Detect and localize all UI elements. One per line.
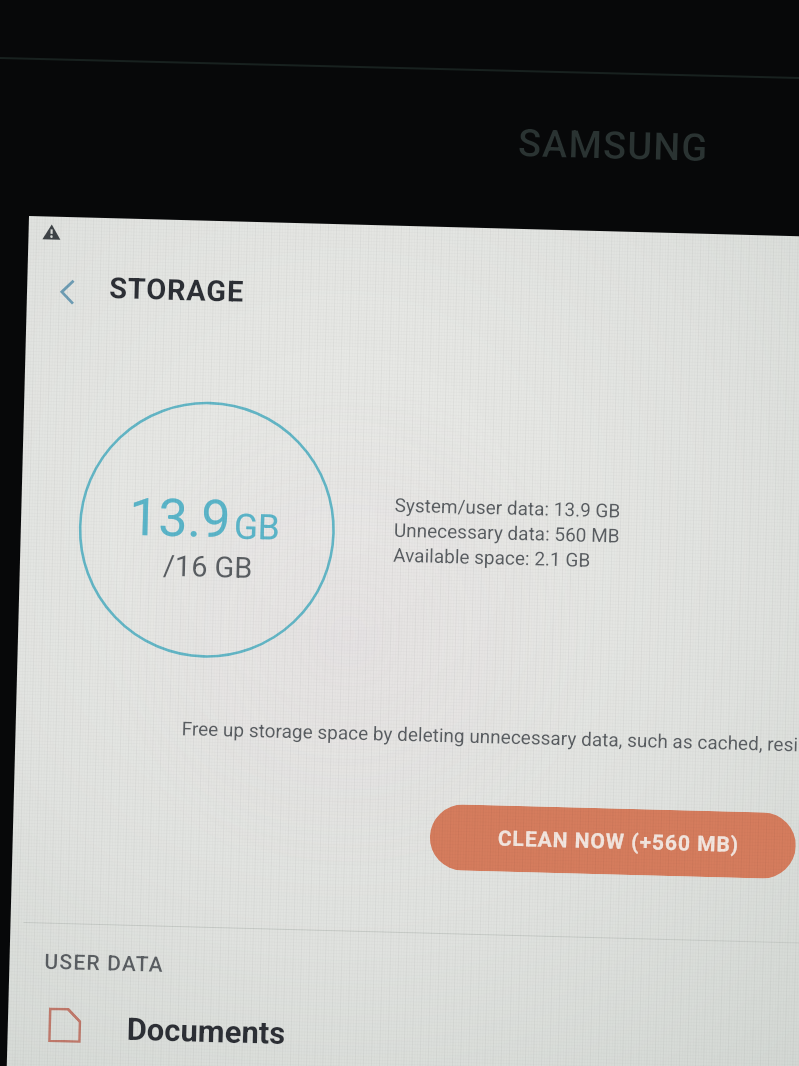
staticText: SAMSUNG	[517, 121, 709, 171]
staticText: STORAGE	[109, 271, 244, 309]
staticText: Available space: 2.1 GB	[393, 544, 590, 574]
staticText: Unnecessary data: 560 MB	[393, 519, 620, 550]
staticText: Documents	[126, 1011, 286, 1051]
button[interactable]: Documents	[10, 988, 799, 1066]
staticText: Free up storage space by deleting unnece…	[181, 717, 799, 755]
staticText: CLEAN NOW (+560 MB)	[497, 826, 740, 858]
staticText: 13.9	[128, 487, 232, 550]
button[interactable]: Back	[39, 264, 95, 320]
staticText: System/user data: 13.9 GB	[394, 494, 621, 525]
staticText: GB	[233, 506, 280, 549]
staticText: USER DATA	[44, 950, 165, 978]
staticText: /16 GB	[162, 549, 253, 585]
button[interactable]: CLEAN NOW (+560 MB)	[429, 804, 797, 879]
